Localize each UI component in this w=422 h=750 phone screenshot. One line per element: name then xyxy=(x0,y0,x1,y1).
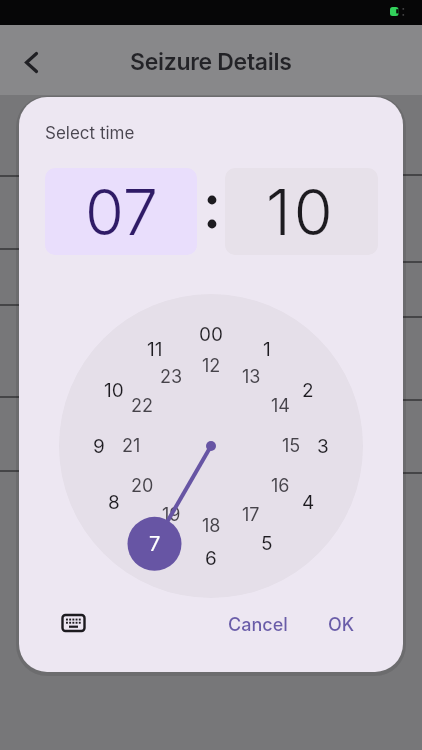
staticText: 15 xyxy=(282,435,301,457)
staticText: 8 xyxy=(108,491,120,514)
staticText: Seizure Details xyxy=(130,48,292,76)
staticText: 18 xyxy=(202,515,221,537)
staticText: 00 xyxy=(199,323,223,346)
staticText: 07 xyxy=(85,174,158,250)
staticText: 17 xyxy=(242,504,260,526)
staticText: 12 xyxy=(202,355,221,377)
staticText: 5 xyxy=(261,532,273,555)
staticText: OK xyxy=(328,614,355,636)
staticText: 23 xyxy=(160,366,183,388)
staticText: 14 xyxy=(271,395,290,417)
staticText: 13 xyxy=(242,366,261,388)
staticText: 21 xyxy=(122,435,141,457)
staticText: 10 xyxy=(104,379,124,402)
staticText: Cancel xyxy=(228,614,288,636)
staticText: 9 xyxy=(93,435,105,458)
staticText: 6 xyxy=(205,547,217,570)
staticText: 10 xyxy=(266,174,336,250)
staticText: 22 xyxy=(131,395,153,417)
staticText: 3 xyxy=(317,435,329,458)
staticText: 19 xyxy=(162,504,181,526)
staticText: 7 xyxy=(149,532,161,556)
staticText: Select time xyxy=(45,123,135,144)
staticText: 2 xyxy=(302,379,314,402)
staticText: 11 xyxy=(147,338,163,361)
staticText: 1 xyxy=(263,338,271,361)
staticText: 7 xyxy=(150,532,161,555)
staticText: 20 xyxy=(131,475,154,497)
staticText: 16 xyxy=(271,475,290,497)
staticText: 4 xyxy=(302,491,315,514)
